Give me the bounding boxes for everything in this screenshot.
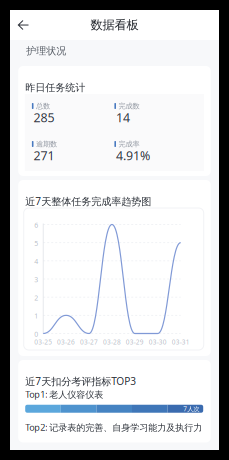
staticText: 近7天整体任务完成率趋势图 xyxy=(25,194,151,208)
staticText: 2 xyxy=(34,293,38,302)
staticText: 271 xyxy=(33,147,54,164)
staticText: 03-28 xyxy=(103,337,121,346)
staticText: 03-29 xyxy=(126,337,144,346)
staticText: 3 xyxy=(34,275,38,284)
staticText: 6 xyxy=(34,220,38,230)
staticText: 285 xyxy=(33,109,54,126)
staticText: Top2: 记录表的完善、自身学习能力及执行力 xyxy=(25,421,202,433)
staticText: 1 xyxy=(34,311,38,320)
staticText: 03-26 xyxy=(57,337,75,346)
staticText: 03-30 xyxy=(149,337,167,346)
staticText: 14 xyxy=(116,109,130,126)
staticText: 5 xyxy=(34,238,38,248)
staticText: 护理状况 xyxy=(26,45,66,57)
staticText: Top1: 老人仪容仪表 xyxy=(25,388,103,400)
staticText: 4 xyxy=(34,257,38,266)
staticText: 昨日任务统计 xyxy=(25,81,85,94)
staticText: 逾期数 xyxy=(36,139,57,149)
staticText: 7人次 xyxy=(183,404,199,413)
staticText: 总数 xyxy=(36,101,50,111)
staticText: 数据看板 xyxy=(90,17,138,33)
staticText: 03-25 xyxy=(34,337,52,346)
button[interactable]: 返回 xyxy=(10,12,37,38)
staticText: 完成率 xyxy=(118,139,139,149)
staticText: 近7天扣分考评指标TOP3 xyxy=(25,374,136,388)
staticText: 03-31 xyxy=(172,337,190,346)
staticText: 0 xyxy=(34,329,38,339)
staticText: 完成数 xyxy=(118,101,139,111)
staticText: 4.91% xyxy=(116,147,150,164)
staticText: 03-27 xyxy=(80,337,98,346)
